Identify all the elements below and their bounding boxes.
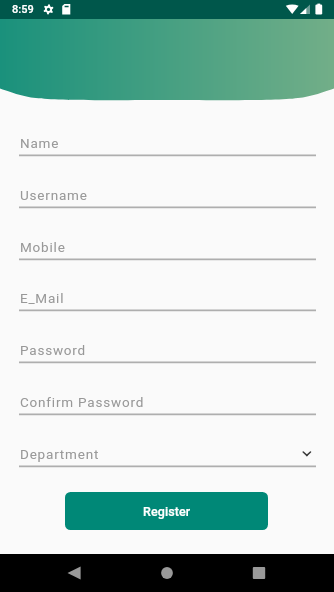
staticText: 8:59 <box>12 3 34 16</box>
staticText: Confirm Password <box>20 394 145 410</box>
button[interactable]: Mobile <box>20 239 315 259</box>
button[interactable]: Name <box>20 135 315 155</box>
button[interactable]: Register <box>65 492 268 530</box>
button[interactable]: Username <box>20 187 315 207</box>
staticText: Username <box>20 187 88 203</box>
other: Select department <box>302 451 312 457</box>
staticText: Name <box>20 135 60 151</box>
button[interactable]: Back <box>52 554 96 592</box>
button[interactable]: E_Mail <box>20 290 315 310</box>
button[interactable]: Home <box>145 554 189 592</box>
button[interactable]: Department <box>20 446 315 466</box>
button[interactable]: Confirm Password <box>20 394 315 414</box>
button[interactable]: Password <box>20 342 315 362</box>
staticText: Mobile <box>20 239 66 255</box>
staticText: Password <box>20 342 87 358</box>
staticText: Department <box>20 446 100 462</box>
staticText: E_Mail <box>20 290 65 306</box>
staticText: Register <box>143 504 191 519</box>
button[interactable]: Recent apps <box>237 554 281 592</box>
